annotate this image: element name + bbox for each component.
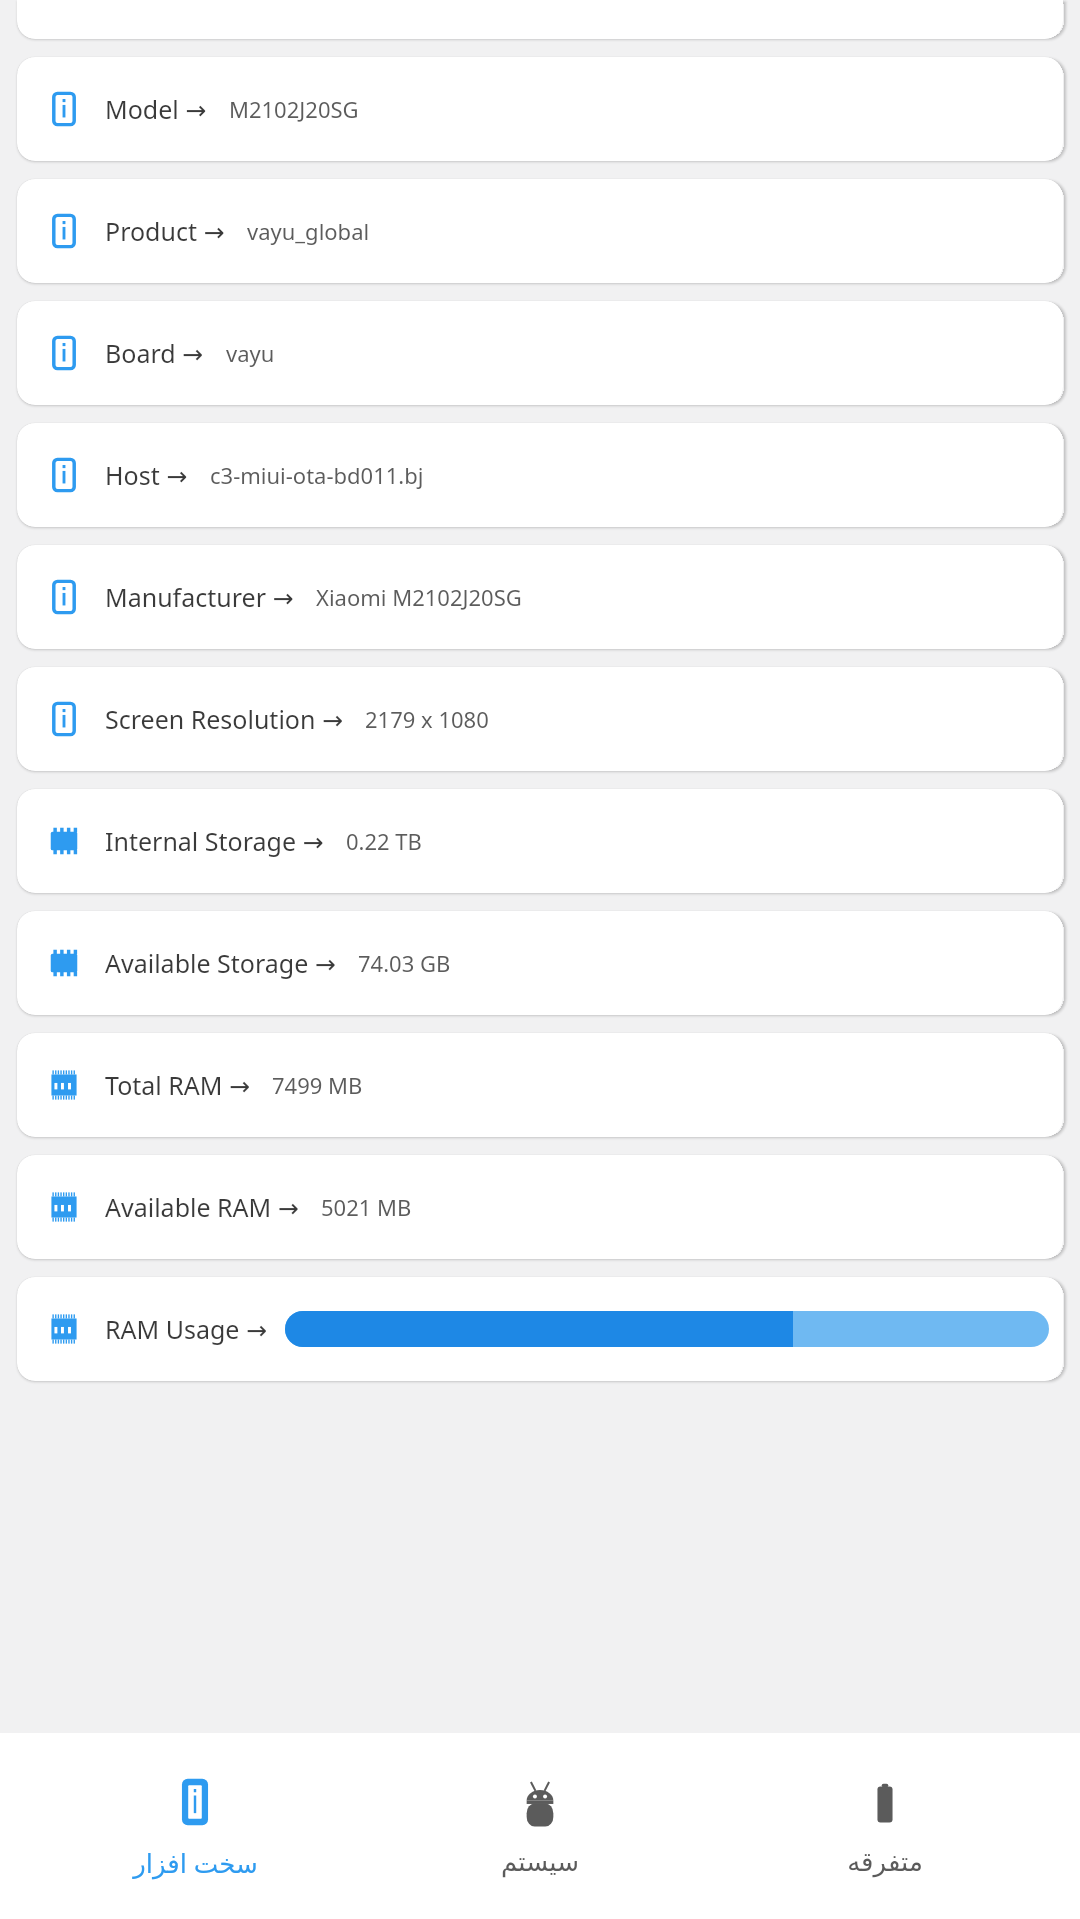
- staticText: vayu: [226, 338, 275, 368]
- button[interactable]: سخت افزار: [45, 1733, 345, 1919]
- button[interactable]: Total RAM →: [17, 1033, 1063, 1137]
- staticText: vayu_global: [247, 216, 370, 246]
- staticText: Xiaomi M2102J20SG: [316, 582, 522, 612]
- button[interactable]: Available RAM →: [17, 1155, 1063, 1259]
- button[interactable]: Product →: [17, 179, 1063, 283]
- button[interactable]: متفرقه: [735, 1733, 1035, 1919]
- staticText: Model →: [105, 92, 207, 126]
- button[interactable]: Internal Storage →: [17, 789, 1063, 893]
- staticText: Available RAM →: [105, 1190, 299, 1224]
- staticText: Manufacturer →: [105, 580, 294, 614]
- button[interactable]: Available Storage →: [17, 911, 1063, 1015]
- button[interactable]: سیستم: [390, 1733, 690, 1919]
- staticText: Internal Storage →: [105, 824, 324, 858]
- button[interactable]: Model →: [17, 57, 1063, 161]
- staticText: Available Storage →: [105, 946, 336, 980]
- staticText: 0.22 TB: [346, 826, 422, 856]
- staticText: 7499 MB: [272, 1070, 363, 1100]
- staticText: 2179 x 1080: [365, 704, 489, 734]
- staticText: M2102J20SG: [229, 94, 359, 124]
- button[interactable]: Manufacturer →: [17, 545, 1063, 649]
- staticText: Product →: [105, 214, 225, 248]
- staticText: 5021 MB: [321, 1192, 412, 1222]
- staticText: سیستم: [501, 1847, 579, 1877]
- staticText: Total RAM →: [105, 1068, 250, 1102]
- staticText: متفرقه: [847, 1847, 923, 1877]
- button[interactable]: Host →: [17, 423, 1063, 527]
- staticText: 74.03 GB: [358, 948, 451, 978]
- button[interactable]: Screen Resolution →: [17, 667, 1063, 771]
- staticText: Screen Resolution →: [105, 702, 343, 736]
- button[interactable]: Board →: [17, 301, 1063, 405]
- staticText: سخت افزار: [133, 1845, 258, 1880]
- staticText: Host →: [105, 458, 188, 492]
- staticText: c3-miui-ota-bd011.bj: [210, 460, 424, 490]
- staticText: Board →: [105, 336, 204, 370]
- button[interactable]: RAM Usage →: [17, 1277, 1063, 1381]
- staticText: RAM Usage →: [105, 1312, 267, 1346]
